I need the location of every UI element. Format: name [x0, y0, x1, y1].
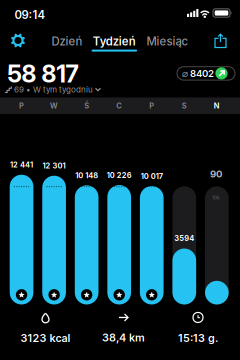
button[interactable]: 3123 kcal	[20, 312, 70, 345]
button[interactable]	[10, 32, 26, 48]
button[interactable]: 15:13 g.	[178, 312, 218, 345]
staticText: 12 301	[43, 161, 66, 170]
staticText: 10 148	[75, 171, 98, 180]
staticText: P	[19, 101, 24, 110]
staticText: W tym tygodniu	[33, 85, 93, 94]
staticText: 10k	[212, 195, 220, 201]
staticText: Miesiąc	[146, 35, 188, 48]
staticText: •	[26, 85, 31, 94]
staticText: 3594	[174, 234, 194, 243]
staticText: ⌀	[182, 67, 188, 79]
staticText: 90	[210, 168, 222, 180]
button[interactable]: ⌀	[177, 67, 235, 80]
staticText: 69	[14, 85, 24, 94]
staticText: W	[50, 101, 58, 110]
button[interactable]: Miesiąc	[146, 35, 188, 48]
staticText: 3123 kcal	[20, 331, 70, 345]
staticText: N	[214, 101, 220, 110]
staticText: S	[182, 101, 187, 110]
staticText: 58 817	[7, 59, 78, 88]
button[interactable]: Dzień	[51, 35, 82, 48]
staticText: 12 441	[10, 160, 33, 169]
staticText: 09:14	[14, 8, 45, 22]
staticText: Tydzień	[93, 35, 136, 48]
staticText: P	[149, 101, 154, 110]
staticText: 8402	[190, 68, 214, 79]
staticText: 10 017	[141, 172, 163, 181]
button[interactable]	[214, 33, 227, 48]
staticText: Ś	[84, 101, 89, 110]
button[interactable]: Tydzień	[93, 35, 136, 48]
staticText: 38,4 km	[102, 331, 145, 344]
staticText: Dzień	[51, 35, 82, 48]
staticText: C	[116, 101, 122, 110]
staticText: 15:13 g.	[178, 331, 218, 345]
button[interactable]: 38,4 km	[102, 313, 145, 344]
staticText: 10 226	[107, 171, 132, 180]
